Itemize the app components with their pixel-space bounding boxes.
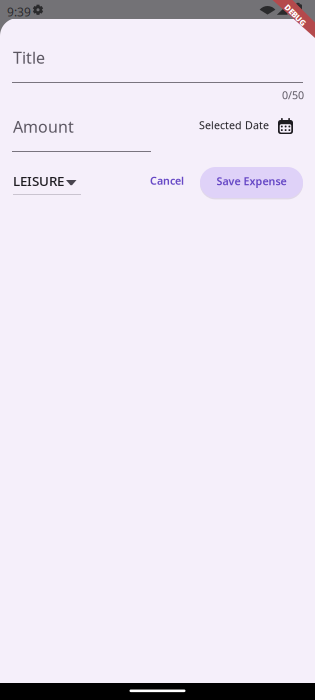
staticText: 9:39: [7, 4, 31, 20]
staticText: LEISURE: [13, 172, 64, 190]
button[interactable]: Title: [12, 36, 303, 83]
staticText: Save Expense: [216, 174, 286, 188]
staticText: Cancel: [150, 173, 184, 188]
button[interactable]: Amount: [12, 105, 151, 152]
button[interactable]: LEISURE: [12, 172, 88, 195]
button[interactable]: Selected Date: [199, 114, 309, 136]
staticText: Selected Date: [199, 118, 269, 132]
staticText: DEBUG: [282, 10, 309, 20]
staticText: 0/50: [282, 88, 304, 102]
button[interactable]: Save Expense: [200, 167, 303, 198]
staticText: Amount: [13, 116, 74, 137]
staticText: Title: [13, 47, 45, 68]
button[interactable]: Cancel: [141, 165, 193, 196]
